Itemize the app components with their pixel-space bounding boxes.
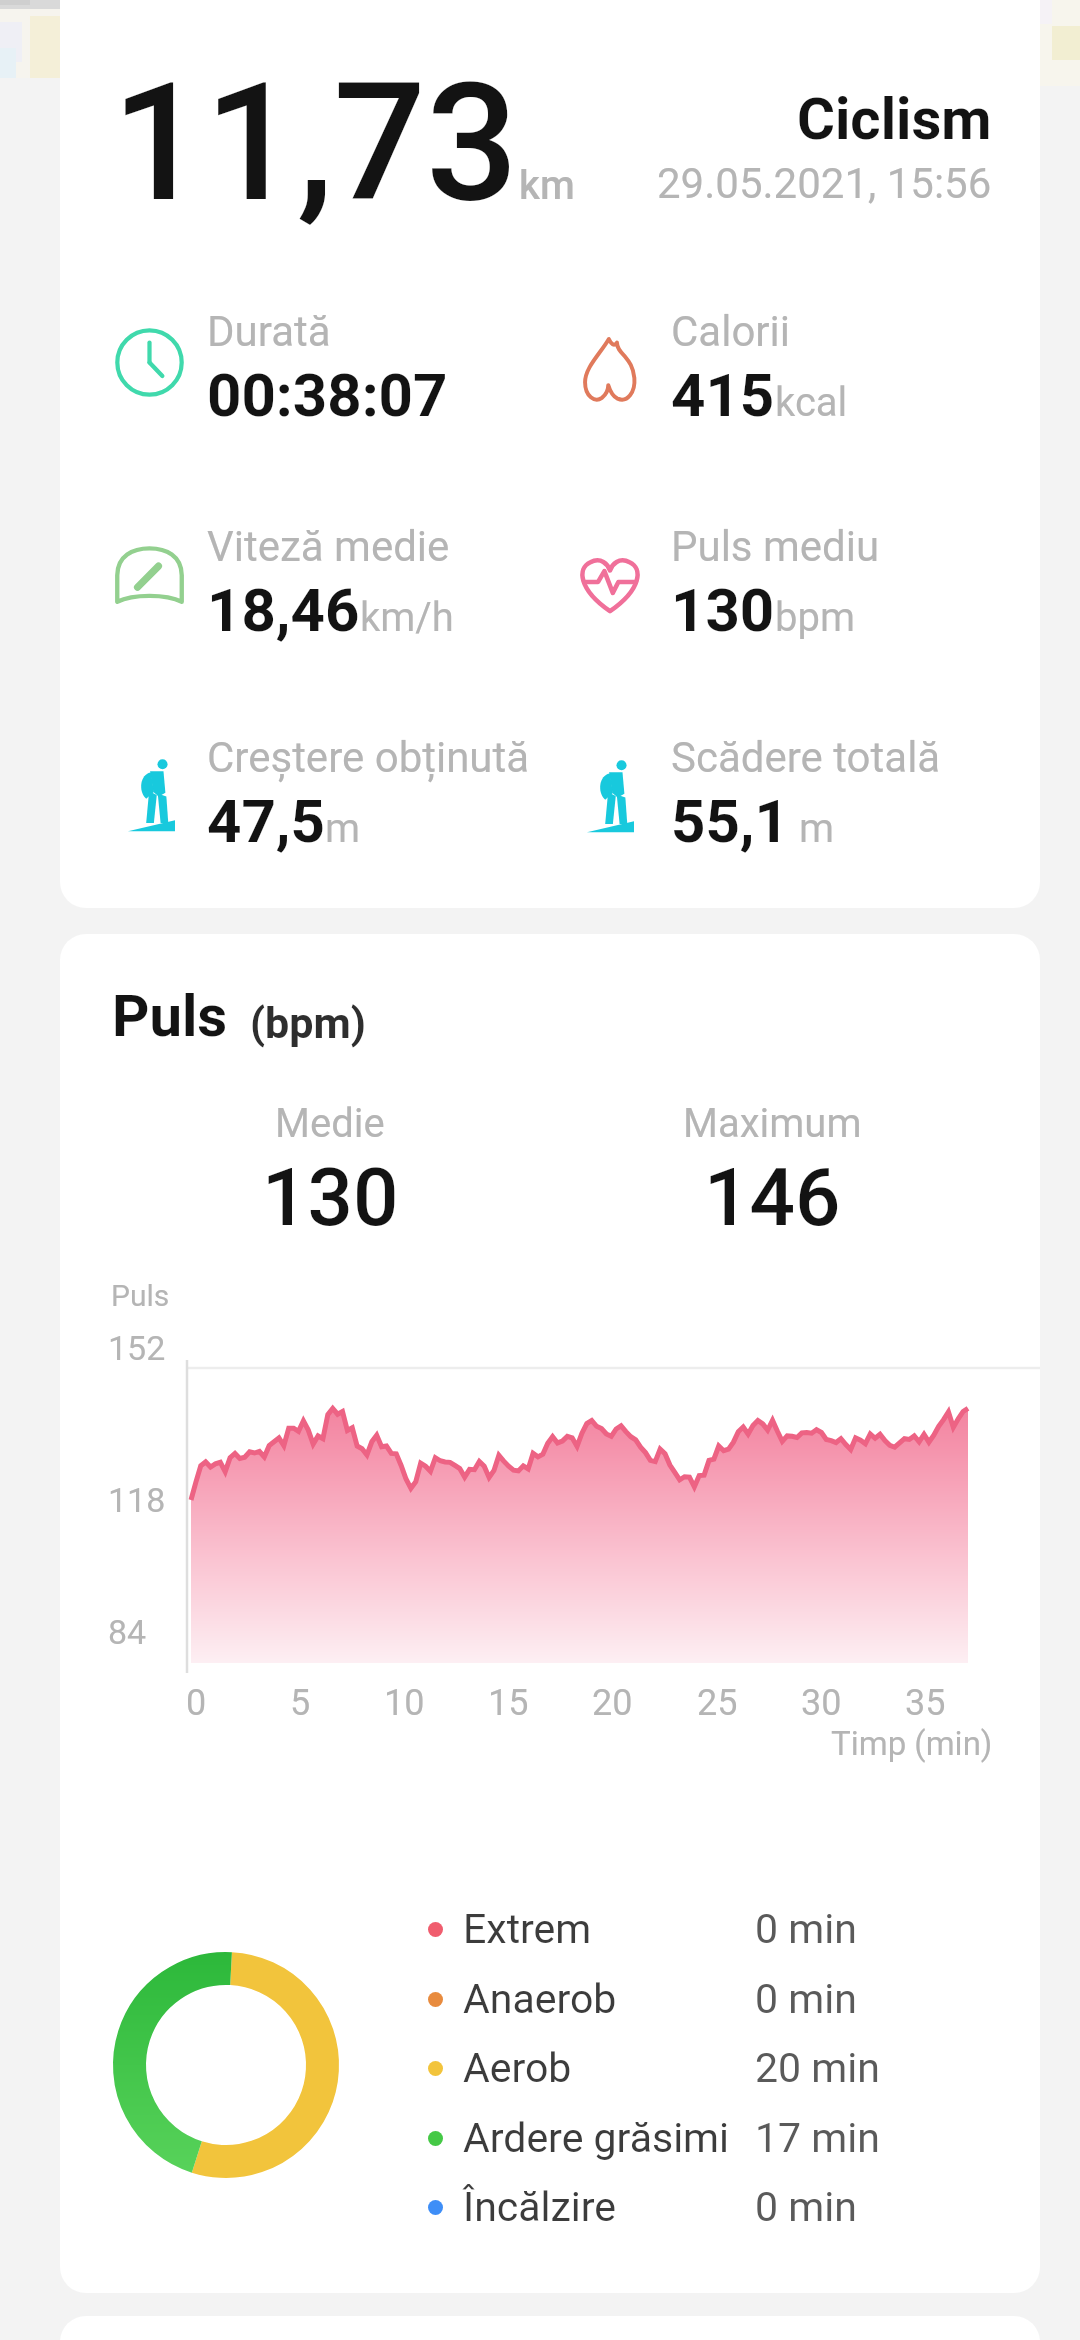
staticText: 0 xyxy=(186,1682,207,1724)
staticText: 130 xyxy=(262,1151,399,1245)
staticText: 35 xyxy=(905,1682,946,1724)
staticText: Încălzire xyxy=(463,2183,755,2231)
button[interactable]: 11,73 xyxy=(60,0,1040,908)
staticText: 15 xyxy=(488,1682,529,1724)
staticText: Timp (min) xyxy=(831,1724,993,1763)
staticText: 30 xyxy=(801,1682,842,1724)
staticText: 18,46 xyxy=(207,575,360,645)
staticText: 29.05.2021, 15:56 xyxy=(657,159,992,208)
staticText: (bpm) xyxy=(250,998,366,1048)
staticText: Durată xyxy=(207,307,331,356)
staticText: 20 xyxy=(592,1682,633,1724)
staticText: bpm xyxy=(775,594,855,641)
other: Average speed xyxy=(112,545,187,611)
button[interactable]: Calories xyxy=(575,307,1025,442)
staticText: 47,5 xyxy=(207,786,325,856)
staticText: Scădere totală xyxy=(671,733,941,782)
staticText: Anaerob xyxy=(463,1975,755,2023)
staticText: 10 xyxy=(384,1682,425,1724)
button[interactable]: Încălzire xyxy=(428,2173,988,2241)
staticText: Viteză medie xyxy=(207,522,450,571)
staticText: 415 xyxy=(671,360,775,430)
button[interactable]: Aerob xyxy=(428,2034,988,2102)
staticText: 5 xyxy=(290,1682,311,1724)
staticText: 00:38:07 xyxy=(207,360,448,430)
other: Duration xyxy=(113,326,186,399)
staticText: km xyxy=(519,162,575,209)
staticText: 84 xyxy=(108,1612,147,1652)
button[interactable]: Extrem xyxy=(428,1895,988,1963)
button[interactable]: Elevation xyxy=(111,733,561,868)
staticText: Calorii xyxy=(671,307,791,356)
staticText: 25 xyxy=(697,1682,738,1724)
staticText: 0 min xyxy=(755,1975,857,2023)
staticText: kcal xyxy=(775,379,848,426)
other: Elevation xyxy=(127,758,175,832)
other: Calories xyxy=(581,334,639,405)
staticText: m xyxy=(325,805,361,852)
staticText: Creștere obținută xyxy=(207,733,530,782)
staticText: m xyxy=(789,805,834,852)
staticText: Maximum xyxy=(683,1100,862,1147)
staticText: 17 min xyxy=(755,2114,880,2162)
staticText: km/h xyxy=(360,594,454,641)
staticText: 0 min xyxy=(755,1905,857,1953)
button[interactable]: Anaerob xyxy=(428,1965,988,2033)
staticText: Ciclism xyxy=(797,85,992,153)
button[interactable]: Elevation xyxy=(575,733,1025,868)
button[interactable]: Ardere grăsimi xyxy=(428,2104,988,2172)
staticText: Extrem xyxy=(463,1905,755,1953)
staticText: 11,73 xyxy=(112,48,519,239)
staticText: 55,1 xyxy=(671,786,789,856)
button[interactable]: Puls xyxy=(60,934,1040,2293)
staticText: 130 xyxy=(671,575,775,645)
staticText: 152 xyxy=(108,1328,166,1368)
other: Average heart rate xyxy=(575,550,645,618)
staticText: Aerob xyxy=(463,2044,755,2092)
other: Elevation xyxy=(586,759,634,833)
staticText: 118 xyxy=(108,1480,166,1520)
staticText: 20 min xyxy=(755,2044,880,2092)
staticText: Puls mediu xyxy=(671,522,880,571)
button[interactable]: Average heart rate xyxy=(575,522,1025,657)
staticText: 0 min xyxy=(755,2183,857,2231)
staticText: Puls xyxy=(111,1278,170,1313)
staticText: Puls xyxy=(112,982,228,1050)
button[interactable]: Duration xyxy=(111,307,561,442)
staticText: Medie xyxy=(275,1100,385,1147)
button[interactable]: Average speed xyxy=(111,522,561,657)
staticText: Ardere grăsimi xyxy=(463,2114,755,2162)
staticText: 146 xyxy=(704,1151,841,1245)
